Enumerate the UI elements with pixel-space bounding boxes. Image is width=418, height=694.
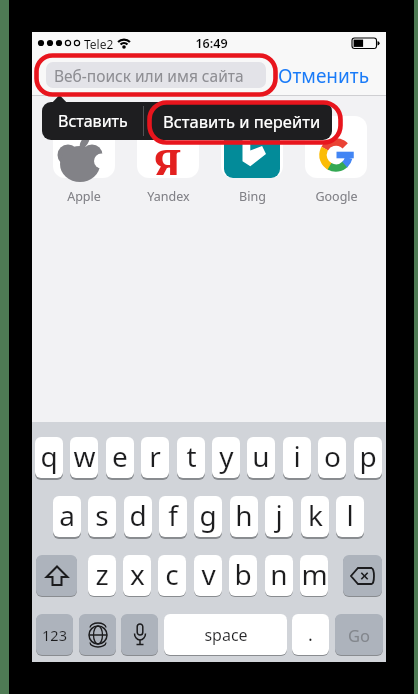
staticText: a: [59, 496, 75, 534]
button[interactable]: k: [301, 496, 329, 537]
button[interactable]: w: [70, 437, 98, 478]
staticText: Вставить и перейти: [163, 110, 321, 132]
button[interactable]: p: [354, 437, 382, 478]
button[interactable]: r: [141, 437, 169, 478]
button[interactable]: [121, 614, 158, 655]
button[interactable]: Вставить и перейти: [152, 102, 332, 140]
staticText: w: [73, 437, 96, 475]
staticText: t: [186, 437, 197, 475]
staticText: d: [129, 496, 147, 534]
staticText: Отменить: [278, 63, 370, 89]
staticText: 123: [42, 625, 67, 645]
staticText: j: [275, 496, 283, 534]
button[interactable]: f: [159, 496, 187, 537]
button[interactable]: [137, 116, 199, 178]
staticText: b: [234, 555, 252, 593]
staticText: Go: [348, 624, 370, 646]
staticText: 16:49: [195, 35, 228, 52]
button[interactable]: n: [265, 555, 293, 596]
button[interactable]: j: [265, 496, 293, 537]
button[interactable]: [305, 116, 367, 178]
staticText: .: [308, 622, 313, 647]
button[interactable]: g: [194, 496, 222, 537]
button[interactable]: Веб-поиск или имя сайта: [46, 62, 266, 88]
button[interactable]: b: [229, 555, 257, 596]
button[interactable]: y: [212, 437, 240, 478]
staticText: Yandex: [147, 188, 190, 205]
staticText: x: [130, 555, 145, 593]
staticText: c: [165, 555, 179, 593]
staticText: Tele2: [84, 36, 114, 52]
staticText: space: [204, 624, 248, 646]
staticText: u: [252, 437, 270, 475]
button[interactable]: [36, 555, 77, 596]
staticText: h: [235, 496, 253, 534]
staticText: m: [301, 555, 328, 593]
button[interactable]: t: [177, 437, 205, 478]
staticText: Apple: [67, 188, 101, 205]
button[interactable]: q: [35, 437, 63, 478]
button[interactable]: z: [88, 555, 116, 596]
staticText: e: [112, 437, 128, 475]
button[interactable]: e: [106, 437, 134, 478]
button[interactable]: .: [292, 614, 329, 655]
staticText: s: [95, 496, 109, 534]
button[interactable]: c: [158, 555, 186, 596]
staticText: r: [149, 437, 161, 475]
staticText: l: [346, 496, 354, 534]
staticText: Вставить: [58, 110, 128, 132]
button[interactable]: [53, 116, 115, 178]
button[interactable]: Отменить: [275, 62, 373, 90]
staticText: z: [95, 555, 109, 593]
button[interactable]: Go: [335, 614, 383, 655]
button[interactable]: [221, 116, 283, 178]
button[interactable]: d: [124, 496, 152, 537]
staticText: v: [201, 555, 216, 593]
staticText: q: [40, 437, 58, 475]
button[interactable]: i: [283, 437, 311, 478]
button[interactable]: [79, 614, 116, 655]
staticText: Google: [315, 188, 358, 205]
button[interactable]: 123: [36, 614, 73, 655]
staticText: g: [199, 496, 217, 534]
staticText: f: [168, 496, 178, 534]
button[interactable]: s: [88, 496, 116, 537]
staticText: y: [219, 437, 234, 475]
button[interactable]: u: [247, 437, 275, 478]
staticText: Bing: [239, 188, 266, 205]
button[interactable]: o: [318, 437, 346, 478]
button[interactable]: [343, 555, 382, 596]
staticText: o: [324, 437, 341, 475]
staticText: n: [270, 555, 288, 593]
button[interactable]: m: [300, 555, 328, 596]
button[interactable]: v: [194, 555, 222, 596]
button[interactable]: a: [53, 496, 81, 537]
staticText: Веб-поиск или имя сайта: [54, 65, 244, 86]
button[interactable]: l: [336, 496, 364, 537]
button[interactable]: h: [230, 496, 258, 537]
button[interactable]: x: [123, 555, 151, 596]
staticText: i: [293, 437, 301, 475]
staticText: p: [359, 437, 377, 475]
button[interactable]: space: [164, 614, 287, 655]
staticText: k: [308, 496, 323, 534]
button[interactable]: Вставить: [42, 102, 143, 140]
staticText: Я: [152, 135, 182, 175]
